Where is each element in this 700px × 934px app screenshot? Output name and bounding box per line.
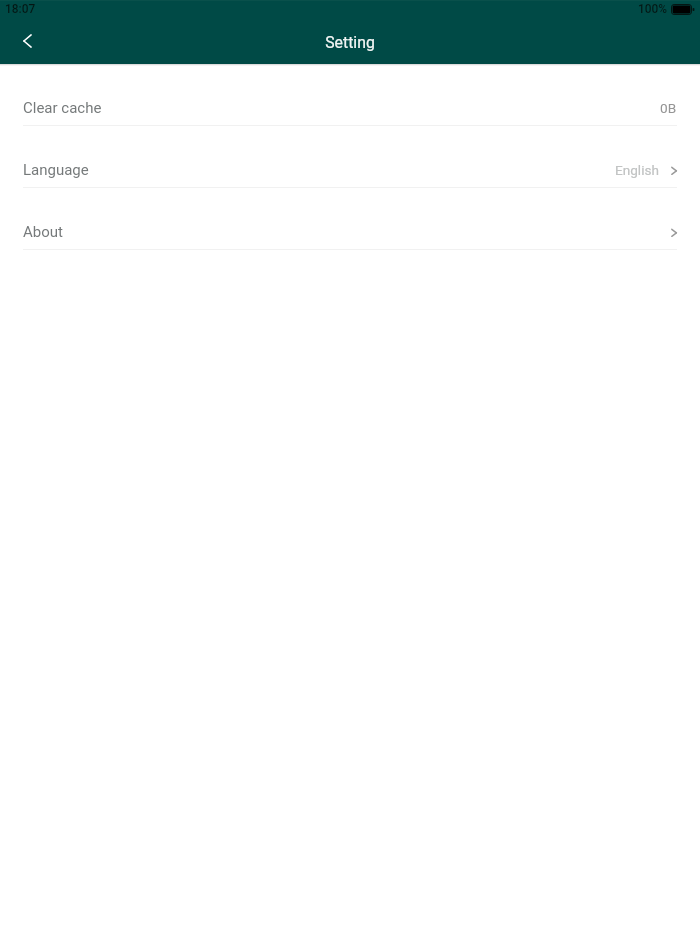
staticText: 0B xyxy=(660,100,677,116)
button[interactable]: Language xyxy=(0,126,700,188)
staticText: 18:07 xyxy=(5,2,36,16)
staticText: Clear cache xyxy=(23,99,102,117)
button[interactable]: Back xyxy=(0,19,56,64)
staticText: Language xyxy=(23,161,89,179)
staticText: English xyxy=(615,162,659,178)
button[interactable]: About xyxy=(0,188,700,250)
staticText: Setting xyxy=(325,33,375,52)
button[interactable]: Clear cache xyxy=(0,64,700,126)
staticText: 100% xyxy=(638,2,668,16)
staticText: About xyxy=(23,223,63,241)
